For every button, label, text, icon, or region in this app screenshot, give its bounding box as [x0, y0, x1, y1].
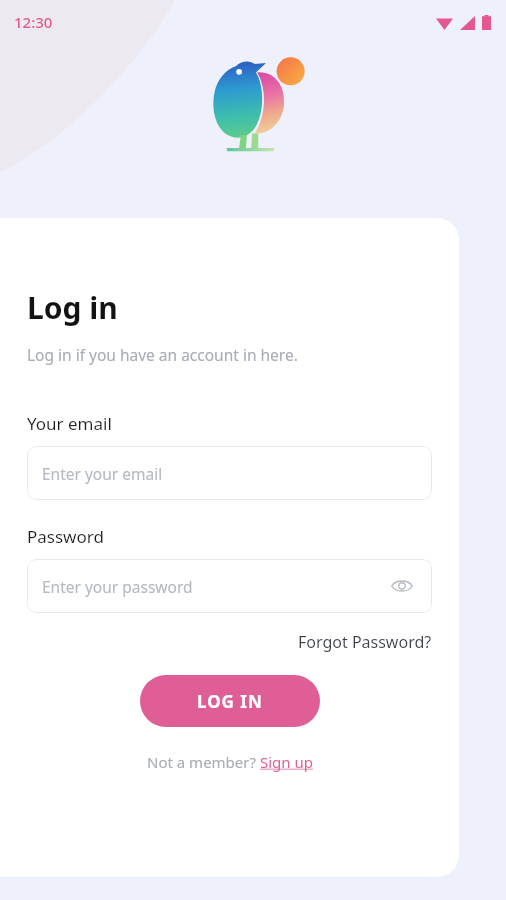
- button[interactable]: Forgot Password?: [298, 631, 432, 653]
- staticText: Forgot Password?: [298, 631, 432, 653]
- staticText: Sign up: [260, 752, 313, 772]
- staticText: LOG IN: [197, 690, 263, 713]
- staticText: Enter your email: [42, 463, 163, 484]
- button[interactable]: Enter your password: [27, 559, 432, 613]
- staticText: Not a member?: [147, 752, 260, 772]
- button[interactable]: Sign up: [260, 752, 313, 772]
- staticText: Enter your password: [42, 576, 193, 597]
- button[interactable]: Enter your email: [27, 446, 432, 500]
- staticText: Log in if you have an account in here.: [27, 344, 298, 365]
- staticText: Your email: [27, 412, 112, 435]
- button[interactable]: LOG IN: [140, 675, 320, 727]
- staticText: Log in: [27, 287, 118, 328]
- staticText: Password: [27, 525, 104, 548]
- button[interactable]: Show password: [387, 571, 417, 601]
- staticText: 12:30: [14, 12, 53, 32]
